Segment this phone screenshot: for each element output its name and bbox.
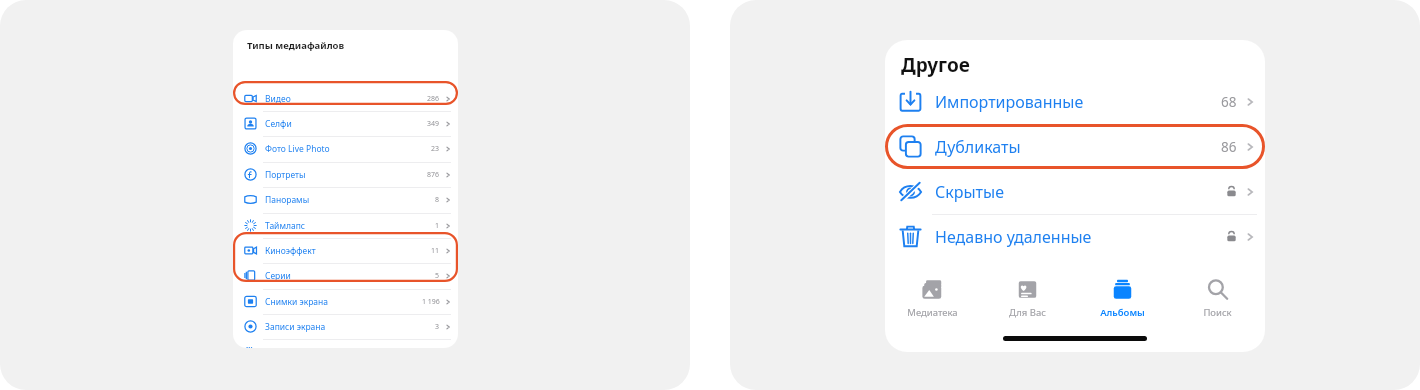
button[interactable]: Скрытые <box>885 169 1265 214</box>
button[interactable]: Недавно удаленные <box>885 214 1265 259</box>
button[interactable]: Альбомы <box>1075 272 1170 324</box>
staticText: Фото Live Photo <box>265 143 330 155</box>
staticText: Серии <box>265 270 291 282</box>
button[interactable]: Импортированные <box>885 79 1265 124</box>
button[interactable]: Таймлапс <box>233 213 458 238</box>
staticText: Таймлапс <box>265 220 305 232</box>
staticText: Для Вас <box>1009 306 1046 319</box>
staticText: 86 <box>1221 138 1237 156</box>
staticText: 3 <box>435 322 440 332</box>
button[interactable]: Киноэффект <box>233 238 458 263</box>
staticText: Записи экрана <box>265 321 326 333</box>
staticText: 23 <box>431 144 440 154</box>
button[interactable]: Портреты <box>233 162 458 187</box>
button[interactable]: Записи экрана <box>233 314 458 339</box>
staticText: Импортированные <box>935 91 1084 113</box>
button[interactable]: Для Вас <box>980 272 1075 324</box>
staticText: 876 <box>427 170 440 180</box>
staticText: 286 <box>427 94 440 104</box>
button[interactable]: Фото Live Photo <box>233 136 458 161</box>
staticText: 5 <box>435 271 440 281</box>
staticText: Селфи <box>265 118 292 130</box>
staticText: 349 <box>427 119 440 129</box>
staticText: Видео <box>265 93 291 105</box>
button[interactable]: Дубликаты <box>885 124 1265 169</box>
button[interactable]: Панорамы <box>233 187 458 212</box>
staticText: 68 <box>1221 93 1237 111</box>
button[interactable]: Серии <box>233 263 458 288</box>
button[interactable]: Поиск <box>1170 272 1265 324</box>
staticText: Недавно удаленные <box>935 226 1092 248</box>
button[interactable]: Видео <box>233 86 458 111</box>
staticText: Типы медиафайлов <box>247 39 345 52</box>
staticText: Поиск <box>1203 306 1232 319</box>
staticText: Портреты <box>265 169 306 181</box>
staticText: Снимки экрана <box>265 296 329 308</box>
staticText: Альбомы <box>1100 306 1145 319</box>
button[interactable]: Селфи <box>233 111 458 136</box>
staticText: Медиатека <box>907 306 958 319</box>
staticText: Киноэффект <box>265 245 316 257</box>
button[interactable]: Снимки экрана <box>233 289 458 314</box>
button[interactable]: Анимированные <box>233 340 458 348</box>
staticText: Другое <box>901 52 970 78</box>
staticText: 1 196 <box>422 297 440 307</box>
staticText: Скрытые <box>935 181 1005 203</box>
staticText: Дубликаты <box>935 136 1021 158</box>
staticText: 11 <box>431 246 440 256</box>
staticText: 8 <box>435 195 440 205</box>
staticText: 1 <box>435 221 440 231</box>
button[interactable]: Медиатека <box>885 272 980 324</box>
staticText: Панорамы <box>265 194 310 206</box>
